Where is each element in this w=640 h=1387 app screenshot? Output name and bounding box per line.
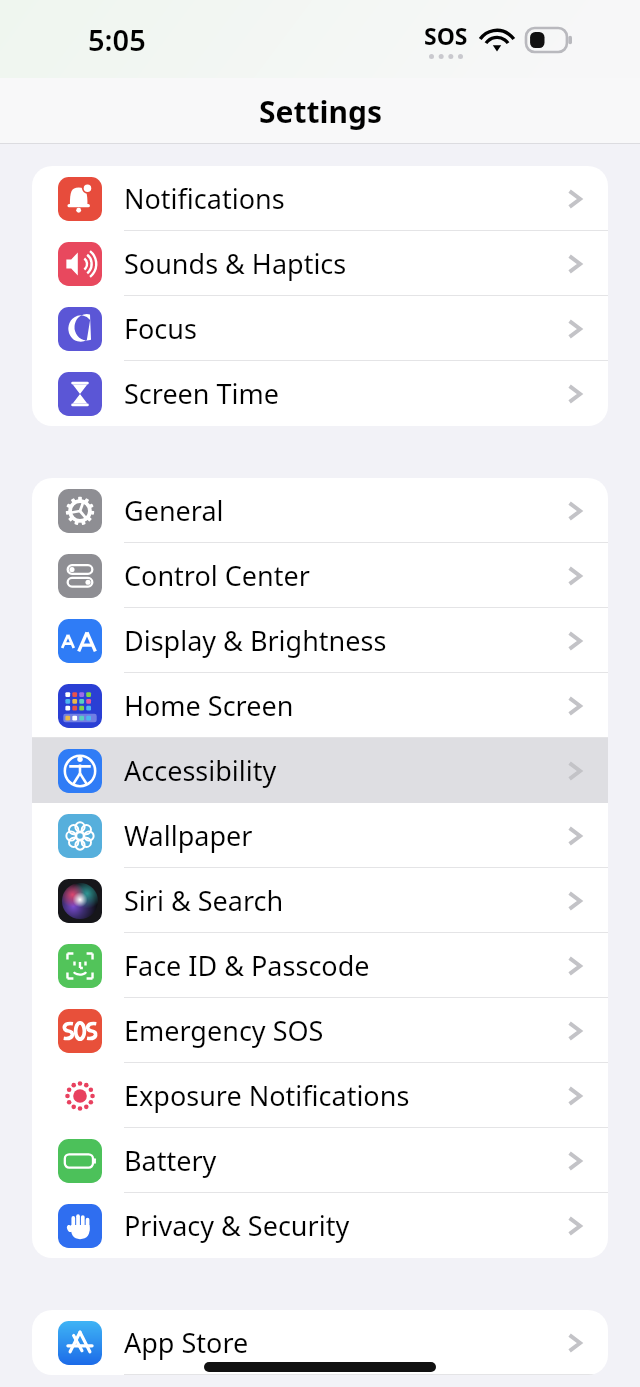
staticText: App Store [124,1324,566,1361]
other: Siri and Search [58,879,102,923]
staticText: SOS [424,20,468,51]
staticText: Focus [124,310,566,347]
staticText: Notifications [124,180,566,217]
other: Notifications [58,177,102,221]
other: General [58,489,102,533]
button[interactable]: Accessibility [32,738,608,803]
other: Focus [58,307,102,351]
button[interactable]: Screen Time [32,361,608,426]
other: Screen Time [58,372,102,416]
other: Emergency SOS [58,1009,102,1053]
button[interactable]: General [32,478,608,543]
other: Exposure Notifications [58,1074,102,1118]
staticText: Face ID & Passcode [124,947,566,984]
other: Control Center [58,554,102,598]
other: Sounds and Haptics [58,242,102,286]
other: Wallpaper [58,814,102,858]
other: Accessibility [58,749,102,793]
staticText: Siri & Search [124,882,566,919]
other: Privacy and Security [58,1204,102,1248]
staticText: Emergency SOS [124,1012,566,1049]
button[interactable]: Wallpaper [32,803,608,868]
button[interactable]: Exposure Notifications [32,1063,608,1128]
button[interactable]: Face ID and Passcode [32,933,608,998]
button[interactable]: Siri and Search [32,868,608,933]
button[interactable]: Battery [32,1128,608,1193]
staticText: Privacy & Security [124,1207,566,1244]
staticText: Exposure Notifications [124,1077,566,1114]
staticText: Control Center [124,557,566,594]
button[interactable]: Emergency SOS [32,998,608,1063]
staticText: General [124,492,566,529]
staticText: 5:05 [88,20,146,59]
staticText: Wallpaper [124,817,566,854]
other: App Store [58,1321,102,1365]
button[interactable]: Control Center [32,543,608,608]
staticText: Screen Time [124,375,566,412]
staticText: Battery [124,1142,566,1179]
other: Face ID and Passcode [58,944,102,988]
button[interactable]: Home Screen [32,673,608,738]
staticText: Sounds & Haptics [124,245,566,282]
staticText: Display & Brightness [124,622,566,659]
other: Display and Brightness [58,619,102,663]
button[interactable]: Display and Brightness [32,608,608,673]
button[interactable]: Focus [32,296,608,361]
button[interactable]: App Store [32,1310,608,1375]
button[interactable]: Privacy and Security [32,1193,608,1258]
staticText: Accessibility [124,752,566,789]
staticText: Settings [259,91,382,132]
button[interactable]: Notifications [32,166,608,231]
other: Battery [58,1139,102,1183]
staticText: Home Screen [124,687,566,724]
button[interactable]: Sounds and Haptics [32,231,608,296]
other: Home Screen [58,684,102,728]
